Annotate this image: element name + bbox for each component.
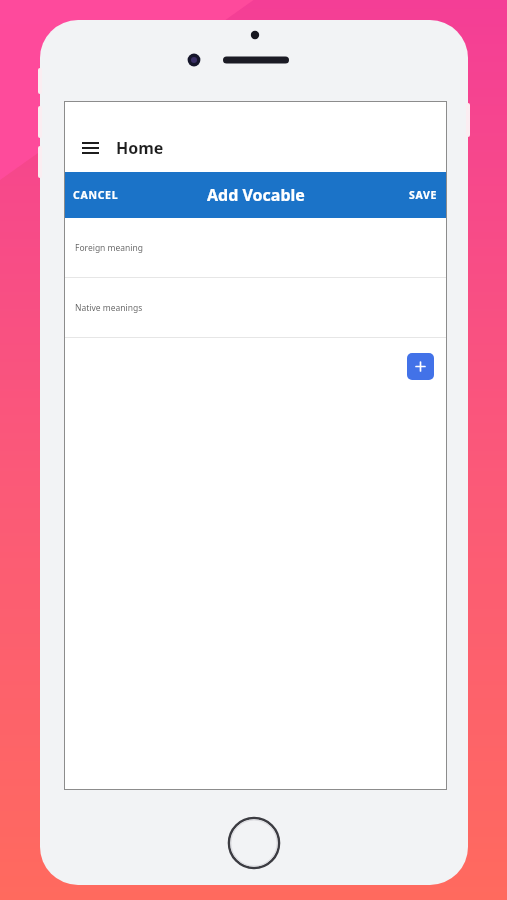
button[interactable]: Foreign meaning — [64, 218, 447, 278]
button[interactable]: Open navigation menu — [75, 133, 105, 163]
staticText: Foreign meaning — [75, 242, 144, 254]
staticText: CANCEL — [73, 188, 119, 202]
staticText: Native meanings — [75, 302, 143, 314]
staticText: SAVE — [409, 188, 438, 202]
button[interactable]: CANCEL — [64, 172, 128, 218]
button[interactable]: SAVE — [400, 172, 447, 218]
button[interactable]: Add native meaning — [407, 353, 434, 380]
staticText: Add Vocable — [207, 184, 305, 206]
button[interactable]: Native meanings — [64, 278, 447, 338]
staticText: Home — [116, 137, 164, 159]
